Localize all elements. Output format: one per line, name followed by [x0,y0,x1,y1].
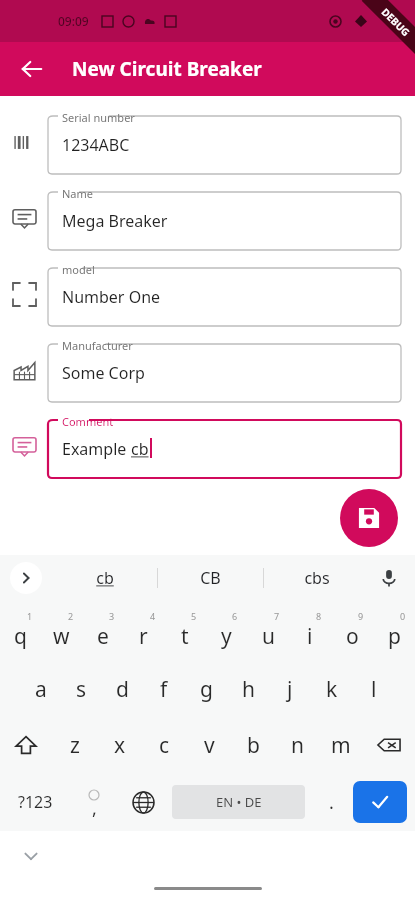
staticText: p [388,622,401,651]
staticText: cb [131,438,149,460]
staticText: Some Corp [62,362,145,384]
staticText: q [14,622,27,651]
button[interactable]: b [231,717,275,773]
button[interactable]: cb [52,555,157,601]
button[interactable]: Change language [118,773,168,831]
staticText: x [114,731,126,760]
staticText: 5 [191,610,197,622]
button[interactable]: EN • DE [172,785,305,819]
staticText: z [70,731,80,760]
staticText: , [92,796,97,821]
button[interactable]: f [143,661,185,717]
staticText: f [160,675,168,704]
staticText: . [329,790,334,815]
staticText: EN • DE [216,793,262,811]
staticText: Number One [62,286,161,308]
staticText: ?123 [18,791,53,813]
button[interactable]: 8 [289,605,331,661]
staticText: 0 [400,610,406,622]
button[interactable]: c [142,717,187,773]
button[interactable]: 9 [331,605,373,661]
button[interactable]: x [97,717,142,773]
staticText: Comment [62,414,114,429]
button[interactable]: h [227,661,269,717]
button[interactable]: j [269,661,311,717]
button[interactable]: 7 [247,605,289,661]
button[interactable]: Emoji and comma [70,773,118,831]
staticText: Serial number [62,110,135,125]
button[interactable]: 4 [123,605,164,661]
button[interactable]: Shift [0,717,52,773]
button[interactable]: Hide keyboard [14,839,48,873]
button[interactable]: k [311,661,353,717]
staticText: v [204,731,215,760]
staticText: 2 [68,610,74,622]
staticText: cb [96,567,114,589]
staticText: r [139,622,148,651]
button[interactable]: Voice input [373,562,405,594]
staticText: 9 [358,610,364,622]
button[interactable]: 0 [373,605,415,661]
staticText: o [346,622,359,651]
staticText: 4 [150,610,156,622]
button[interactable]: Serial number [0,104,415,180]
staticText: g [200,675,213,704]
staticText: 1234ABC [62,134,130,156]
staticText: cbs [304,567,330,589]
button[interactable]: 1 [0,605,41,661]
button[interactable]: a [20,661,61,717]
staticText: 7 [274,610,280,622]
staticText: s [76,675,87,704]
staticText: i [307,622,313,651]
button[interactable]: . [309,773,353,831]
button[interactable]: 3 [82,605,123,661]
staticText: Name [62,186,94,201]
button[interactable]: Manufacturer [0,332,415,408]
button[interactable]: m [319,717,363,773]
button[interactable]: v [187,717,231,773]
staticText: y [221,622,232,651]
staticText: h [242,675,255,704]
staticText: t [181,622,189,651]
staticText: 3 [109,610,115,622]
button[interactable]: n [275,717,319,773]
button[interactable]: s [61,661,102,717]
staticText: u [262,622,275,651]
staticText: m [331,731,351,760]
button[interactable]: Backspace [363,717,415,773]
staticText: 8 [316,610,322,622]
staticText: model [62,262,95,277]
staticText: CB [200,567,221,589]
staticText: Example [62,438,131,460]
button[interactable]: g [185,661,227,717]
button[interactable]: Comment [0,408,415,484]
staticText: 1 [27,610,33,622]
button[interactable]: z [52,717,97,773]
button[interactable]: ?123 [0,773,70,831]
button[interactable]: Save [340,489,398,547]
button[interactable]: 2 [41,605,82,661]
staticText: c [159,731,170,760]
staticText: j [287,675,293,704]
button[interactable]: 5 [164,605,205,661]
staticText: w [53,622,70,651]
button[interactable]: Enter [353,781,407,823]
staticText: 09:09 [58,13,89,29]
staticText: n [291,731,304,760]
staticText: b [247,731,260,760]
staticText: 6 [232,610,238,622]
button[interactable]: l [353,661,395,717]
button[interactable]: Back [10,47,54,91]
button[interactable]: cbs [264,555,369,601]
button[interactable]: Name [0,180,415,256]
staticText: k [326,675,338,704]
button[interactable]: CB [158,555,263,601]
staticText: e [97,622,109,651]
button[interactable]: d [102,661,143,717]
button[interactable]: model [0,256,415,332]
button[interactable]: More suggestions [10,562,42,594]
button[interactable]: 6 [205,605,247,661]
staticText: l [371,675,377,704]
staticText: d [116,675,129,704]
staticText: New Circuit Breaker [72,56,262,82]
